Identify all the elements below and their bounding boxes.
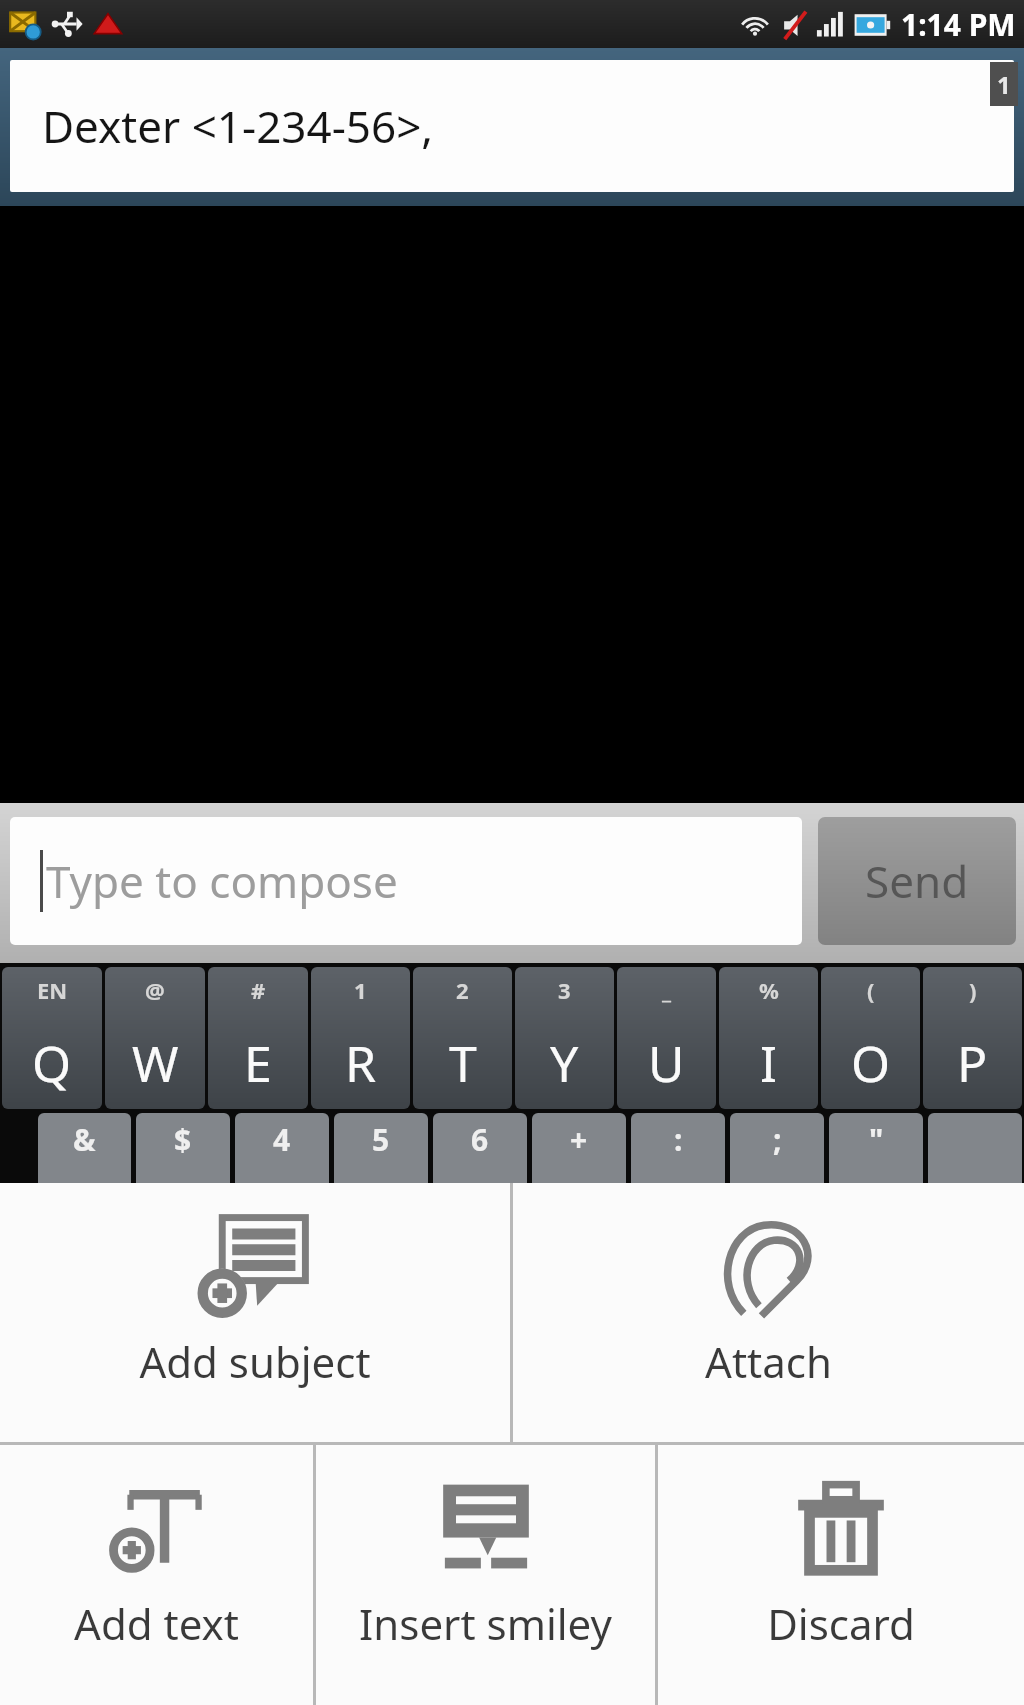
staticText: Add subject [139,1333,371,1390]
staticText: " [869,1119,884,1160]
button[interactable]: 4 [235,1113,329,1183]
staticText: & [73,1119,96,1160]
staticText: Discard [767,1595,915,1652]
staticText: Y [550,1029,579,1097]
staticText: ( [867,975,875,1005]
button[interactable]: 6 [433,1113,527,1183]
staticText: 1 [997,68,1011,101]
staticText: O [851,1029,891,1097]
button[interactable]: Dexter <1-234-56>, [10,60,1014,192]
button[interactable]: Insert smiley [316,1445,655,1705]
button[interactable]: # [208,967,308,1109]
button[interactable]: ; [730,1113,824,1183]
button[interactable]: + [532,1113,626,1183]
staticText: 6 [471,1119,489,1160]
staticText: T [449,1029,477,1097]
staticText: 1 [354,975,367,1005]
staticText: EN [37,975,68,1005]
staticText: 4 [273,1119,291,1160]
button[interactable]: ( [821,967,920,1109]
staticText: _ [662,975,672,1005]
button[interactable]: Add subject [0,1183,510,1442]
staticText: % [759,975,779,1005]
button[interactable]: $ [136,1113,230,1183]
staticText: Q [32,1029,72,1097]
staticText: Insert smiley [359,1595,612,1652]
staticText: ) [969,975,977,1005]
staticText: Send [865,851,969,911]
staticText: Attach [705,1333,832,1390]
button[interactable]: Attach [513,1183,1024,1442]
staticText: P [957,1029,988,1097]
button[interactable]: 5 [334,1113,428,1183]
button[interactable]: @ [105,967,205,1109]
button[interactable]: " [829,1113,923,1183]
staticText: ; [773,1119,782,1160]
button[interactable]: % [719,967,818,1109]
button[interactable]: 3 [515,967,614,1109]
staticText: Dexter <1-234-56>, [42,96,434,156]
staticText: : [674,1119,683,1160]
button[interactable]: 2 [413,967,512,1109]
button[interactable]: & [38,1113,131,1183]
button[interactable]: 1 [311,967,410,1109]
button[interactable]: : [631,1113,725,1183]
staticText: 3 [558,975,571,1005]
staticText: 1:14 PM [901,4,1016,45]
button[interactable]: Discard [658,1445,1024,1705]
staticText: # [251,975,266,1005]
staticText: I [760,1029,777,1097]
staticText: @ [145,975,165,1005]
staticText: Add text [74,1595,239,1652]
staticText: R [345,1029,377,1097]
staticText: W [132,1029,179,1097]
button[interactable]: Type to compose [10,817,802,945]
button[interactable]: EN [2,967,102,1109]
button[interactable]: Backspace [928,1113,1022,1183]
staticText: U [648,1029,685,1097]
button[interactable]: Add text [0,1445,313,1705]
staticText: $ [174,1119,192,1160]
staticText: Type to compose [46,851,398,911]
button[interactable]: 1 recipient [990,62,1018,106]
staticText: 2 [456,975,469,1005]
button[interactable]: ) [923,967,1022,1109]
staticText: 5 [372,1119,390,1160]
staticText: + [570,1119,588,1160]
button[interactable]: Send [818,817,1016,945]
button[interactable]: _ [617,967,716,1109]
staticText: E [244,1029,272,1097]
